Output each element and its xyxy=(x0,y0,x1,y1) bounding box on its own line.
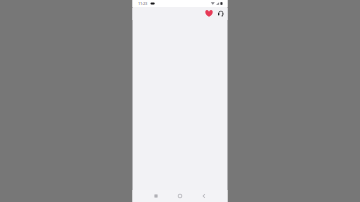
staticText: 11:23 xyxy=(138,1,147,6)
button[interactable]: Recent apps xyxy=(149,190,163,202)
button[interactable]: Home xyxy=(173,190,187,202)
button[interactable]: Support xyxy=(216,8,226,19)
button[interactable]: Back xyxy=(197,190,211,202)
button[interactable]: Favorites xyxy=(203,8,215,19)
